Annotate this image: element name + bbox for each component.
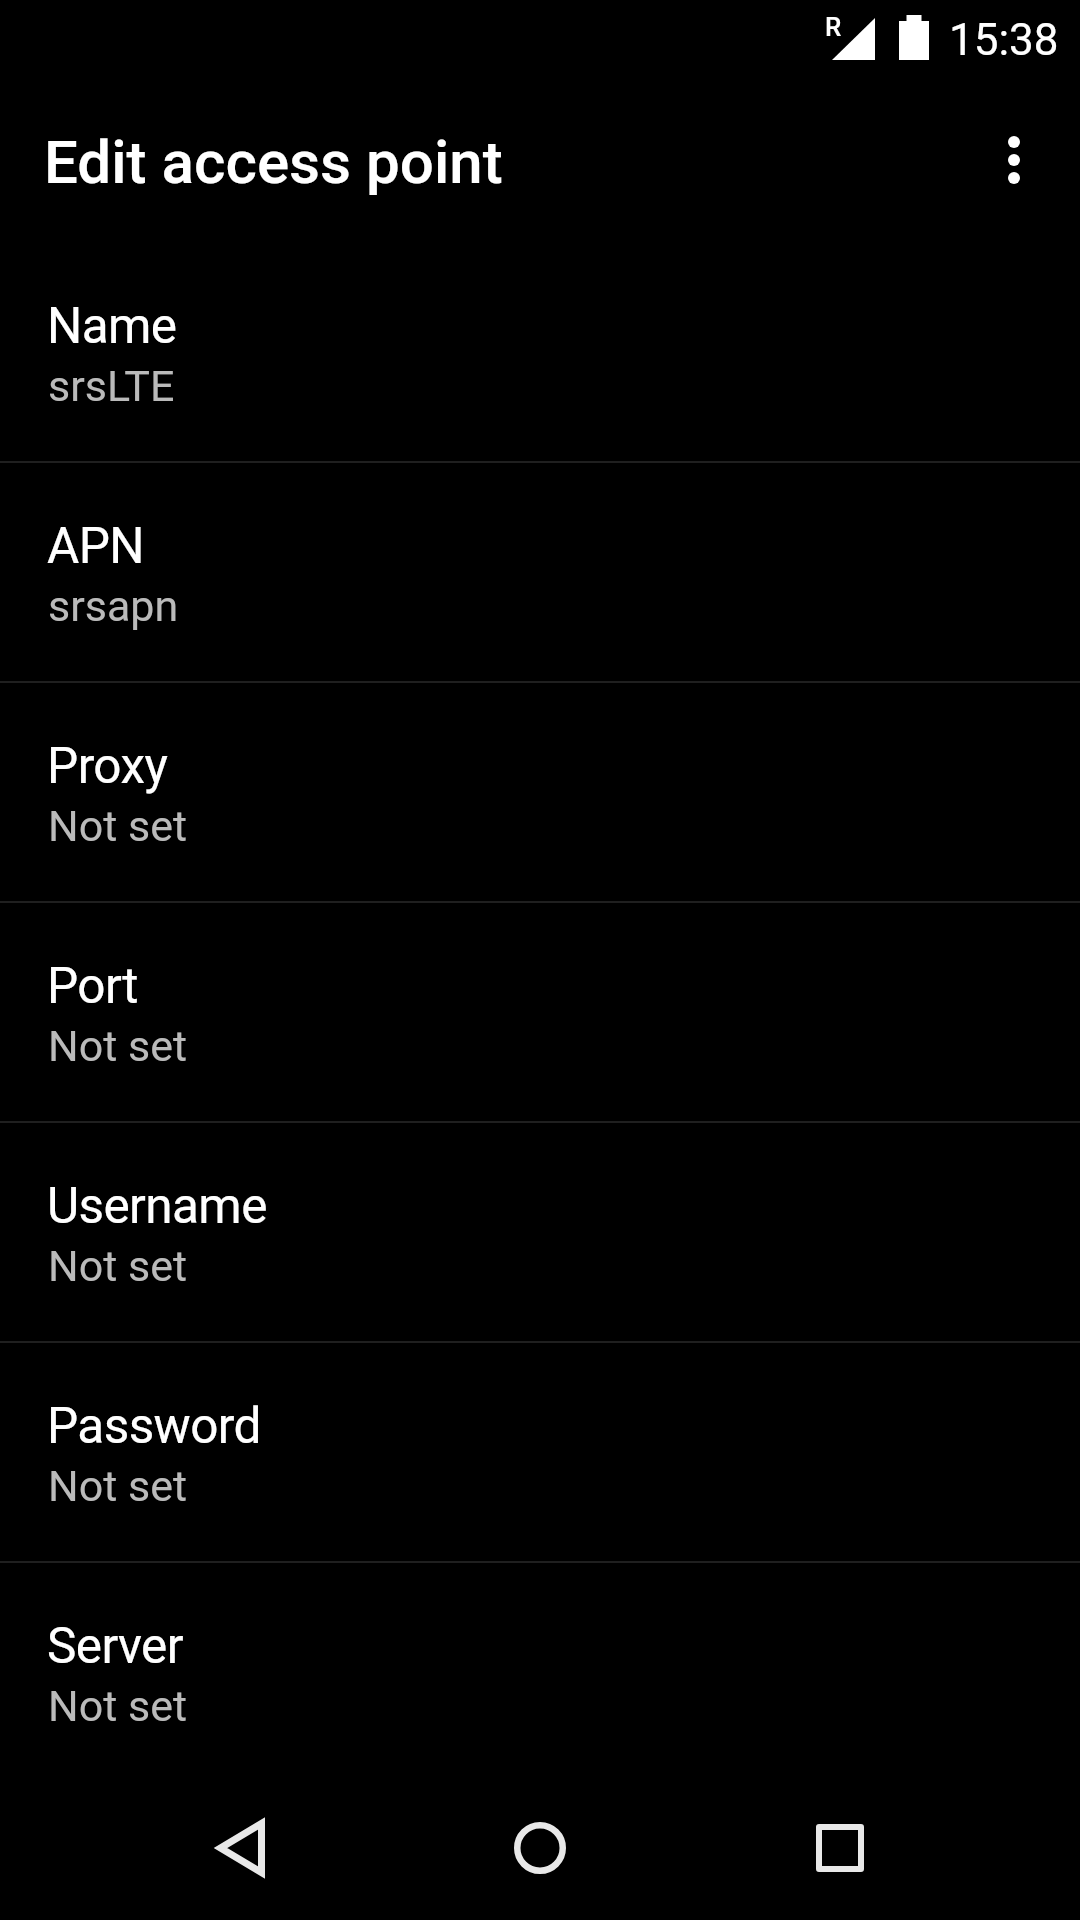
staticText: Password [47, 1397, 261, 1455]
staticText: Proxy [47, 737, 168, 795]
button[interactable]: Proxy [0, 683, 1080, 901]
staticText: Not set [48, 1461, 187, 1511]
staticText: srsLTE [48, 361, 175, 411]
staticText: R [825, 12, 842, 42]
button[interactable]: Recent apps [780, 1788, 900, 1908]
staticText: APN [47, 517, 145, 575]
staticText: Not set [48, 1021, 187, 1071]
staticText: Port [47, 957, 138, 1015]
button[interactable]: APN [0, 463, 1080, 681]
button[interactable]: Home [480, 1788, 600, 1908]
button[interactable]: Server [0, 1563, 1080, 1781]
staticText: Not set [48, 1681, 187, 1731]
button[interactable]: Password [0, 1343, 1080, 1561]
button[interactable]: Name [0, 243, 1080, 461]
staticText: 15:38 [949, 14, 1059, 66]
staticText: Not set [48, 801, 187, 851]
staticText: Name [47, 297, 177, 355]
staticText: Username [47, 1177, 267, 1235]
button[interactable]: Username [0, 1123, 1080, 1341]
staticText: srsapn [48, 581, 179, 631]
button[interactable]: More options [958, 104, 1070, 216]
button[interactable]: Port [0, 903, 1080, 1121]
button[interactable]: Back [180, 1788, 300, 1908]
other: Mobile signal [832, 18, 875, 60]
other: Battery full [899, 15, 929, 60]
staticText: Not set [48, 1241, 187, 1291]
staticText: Edit access point [44, 127, 503, 197]
staticText: Server [47, 1617, 183, 1675]
